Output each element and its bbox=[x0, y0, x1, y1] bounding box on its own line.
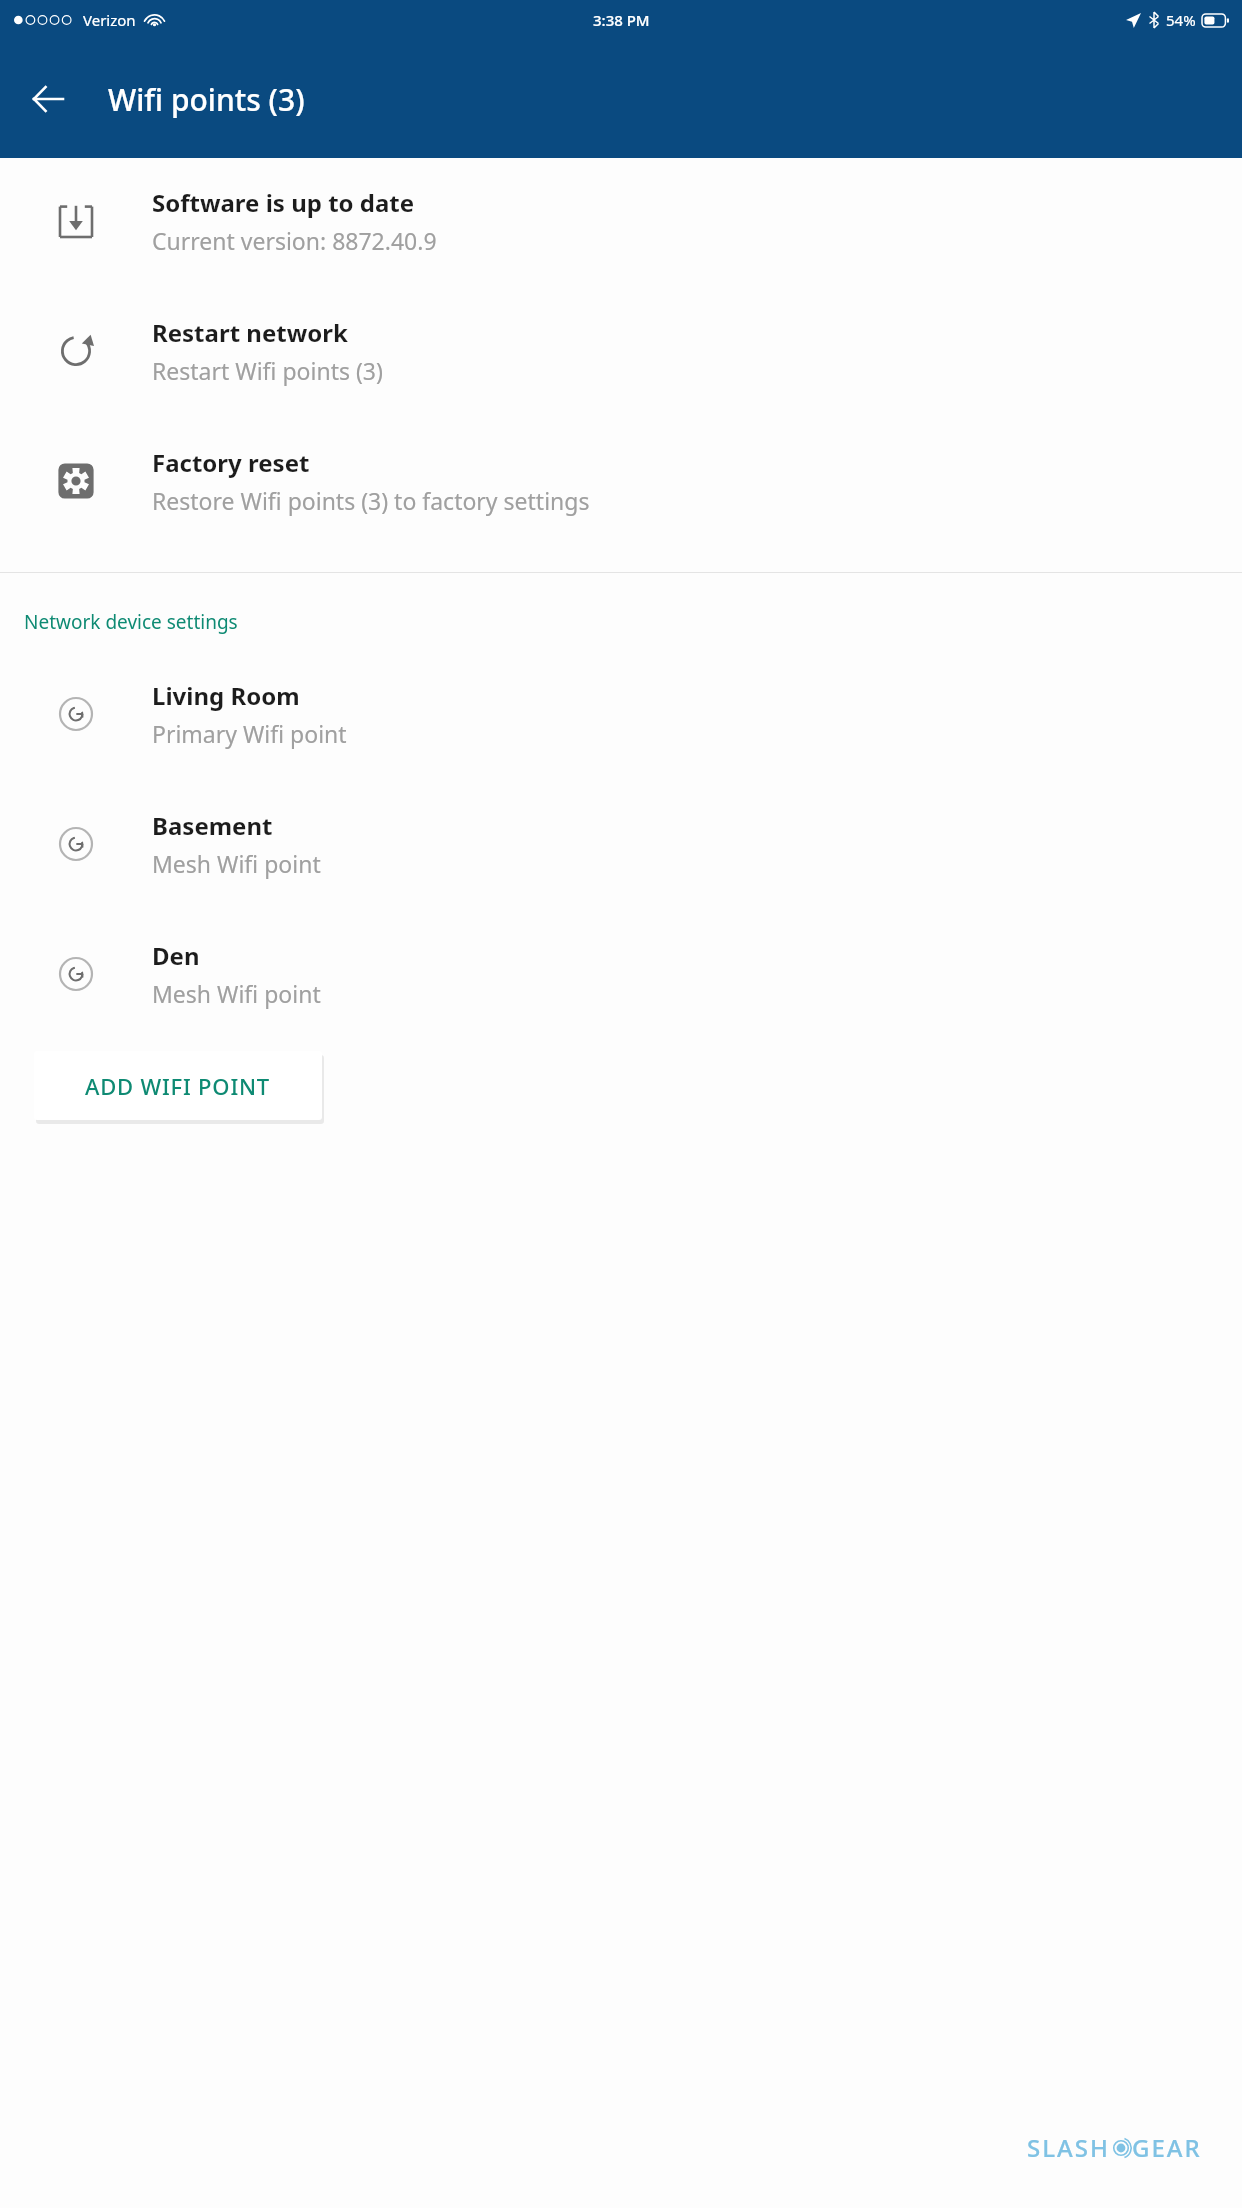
staticText: Den bbox=[152, 939, 200, 972]
staticText: Living Room bbox=[152, 679, 300, 712]
staticText: Wifi points (3) bbox=[108, 79, 305, 120]
staticText: Mesh Wifi point bbox=[152, 848, 321, 879]
button[interactable]: Restart network bbox=[0, 316, 1242, 386]
staticText: Primary Wifi point bbox=[152, 718, 347, 749]
staticText: Restore Wifi points (3) to factory setti… bbox=[152, 485, 590, 516]
staticText: ADD WIFI POINT bbox=[85, 1071, 271, 1101]
staticText: 54% bbox=[1166, 10, 1196, 30]
button[interactable]: Living Room bbox=[0, 679, 1242, 749]
staticText: SLASH bbox=[1027, 2131, 1110, 2164]
button[interactable]: Basement bbox=[0, 809, 1242, 879]
staticText: Mesh Wifi point bbox=[152, 978, 321, 1009]
staticText: Software is up to date bbox=[152, 186, 415, 219]
staticText: Restart network bbox=[152, 316, 348, 349]
staticText: Verizon bbox=[83, 10, 136, 30]
staticText: GEAR bbox=[1132, 2131, 1202, 2164]
staticText: Factory reset bbox=[152, 446, 310, 479]
button[interactable]: Factory reset bbox=[0, 446, 1242, 516]
staticText: 3:38 PM bbox=[593, 10, 650, 30]
button[interactable]: ADD WIFI POINT bbox=[34, 1051, 322, 1120]
staticText: Current version: 8872.40.9 bbox=[152, 225, 437, 256]
button[interactable]: Software is up to date bbox=[0, 186, 1242, 256]
button[interactable]: Back bbox=[20, 71, 76, 127]
staticText: Network device settings bbox=[24, 609, 238, 635]
staticText: Basement bbox=[152, 809, 273, 842]
staticText: Restart Wifi points (3) bbox=[152, 355, 383, 386]
button[interactable]: Den bbox=[0, 939, 1242, 1009]
